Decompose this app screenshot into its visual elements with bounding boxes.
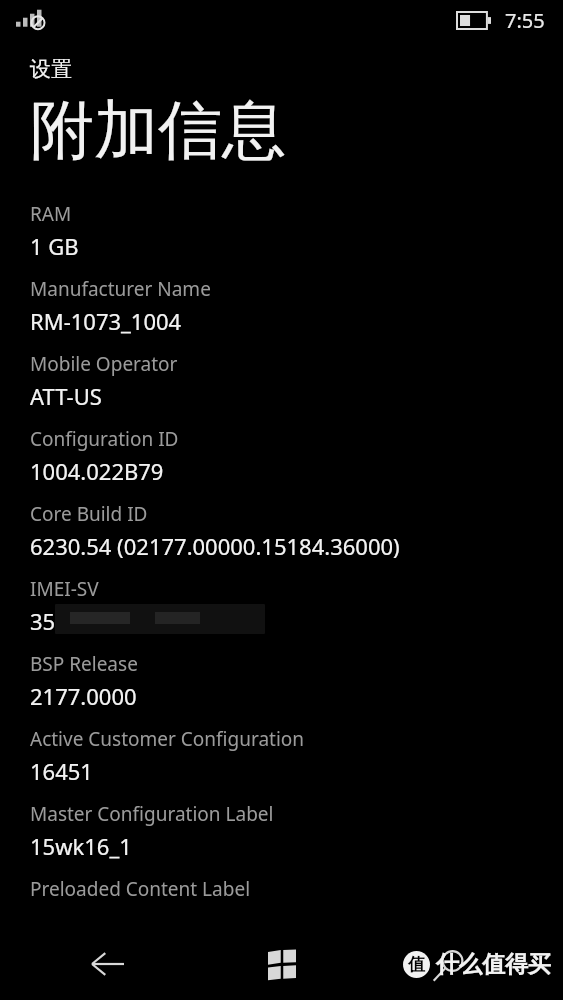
- staticText: Configuration ID: [30, 426, 179, 452]
- button[interactable]: Back: [78, 935, 136, 993]
- button[interactable]: Mobile Operator: [30, 351, 563, 426]
- staticText: Core Build ID: [30, 501, 148, 527]
- staticText: 值: [408, 954, 425, 975]
- button[interactable]: BSP Release: [30, 651, 563, 726]
- staticText: 15wk16_1: [30, 831, 132, 861]
- button[interactable]: Search: [425, 935, 483, 993]
- staticText: 2177.0000: [30, 681, 137, 711]
- button[interactable]: RAM: [30, 201, 563, 276]
- staticText: 1004.022B79: [30, 456, 164, 486]
- staticText: Mobile Operator: [30, 351, 178, 377]
- staticText: 1 GB: [30, 231, 79, 261]
- staticText: Preloaded Content Label: [30, 876, 251, 902]
- staticText: 6230.54 (02177.00000.15184.36000): [30, 531, 400, 561]
- button[interactable]: Manufacturer Name: [30, 276, 563, 351]
- button[interactable]: Core Build ID: [30, 501, 563, 576]
- staticText: 设置: [30, 56, 72, 82]
- staticText: 35 0: [30, 606, 206, 636]
- staticText: RM-1073_1004: [30, 306, 182, 336]
- staticText: ATT-US: [30, 381, 102, 411]
- staticText: IMEI-SV: [30, 576, 99, 602]
- staticText: 7:55: [505, 7, 545, 34]
- button[interactable]: Active Customer Configuration: [30, 726, 563, 801]
- button[interactable]: Start: [253, 935, 311, 993]
- staticText: 附加信息: [30, 90, 286, 171]
- staticText: Master Configuration Label: [30, 801, 274, 827]
- staticText: RAM: [30, 201, 72, 227]
- button[interactable]: Configuration ID: [30, 426, 563, 501]
- staticText: Manufacturer Name: [30, 276, 211, 302]
- staticText: 16451: [30, 756, 93, 786]
- staticText: 什么值得买: [436, 950, 551, 979]
- staticText: Active Customer Configuration: [30, 726, 305, 752]
- button[interactable]: IMEI-SV: [30, 576, 563, 651]
- button[interactable]: Master Configuration Label: [30, 801, 563, 876]
- staticText: BSP Release: [30, 651, 138, 677]
